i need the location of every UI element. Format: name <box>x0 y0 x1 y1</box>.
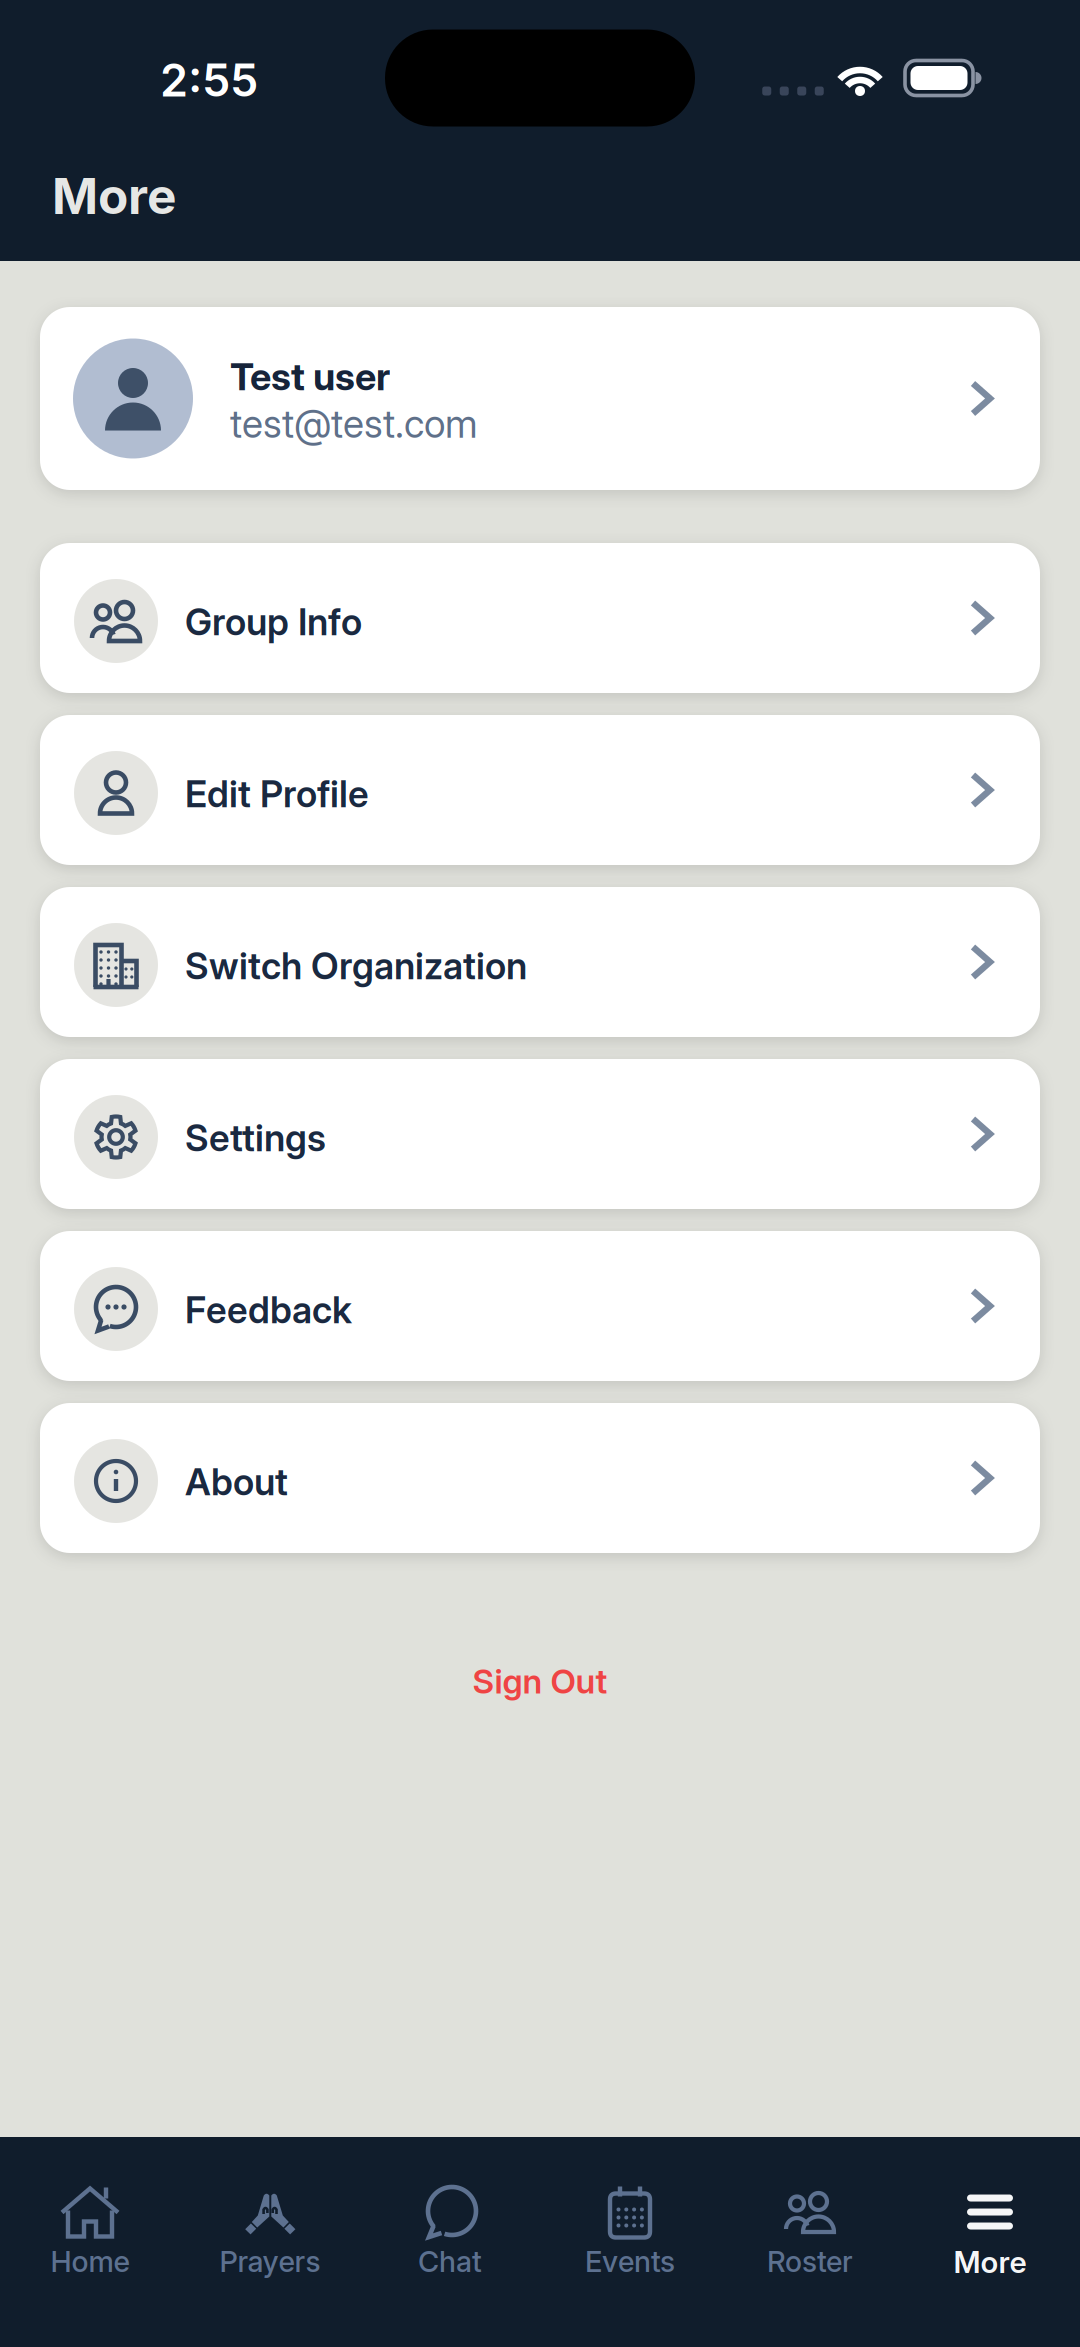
staticText: More <box>52 166 176 226</box>
staticText: Switch Organization <box>185 944 527 988</box>
staticText: Home <box>50 2244 129 2279</box>
button[interactable]: Sign Out <box>472 1661 607 1701</box>
button[interactable]: About <box>40 1403 1040 1553</box>
staticText: Events <box>585 2244 675 2279</box>
button[interactable]: Roster <box>720 2137 900 2347</box>
staticText: Settings <box>185 1116 326 1160</box>
staticText: More <box>953 2244 1026 2280</box>
staticText: About <box>185 1460 288 1504</box>
button[interactable]: Events <box>540 2137 720 2347</box>
button[interactable]: Feedback <box>40 1231 1040 1381</box>
button[interactable]: Switch Organization <box>40 887 1040 1037</box>
staticText: Chat <box>418 2244 482 2279</box>
button[interactable]: Test user <box>40 307 1040 490</box>
button[interactable]: More <box>900 2137 1080 2347</box>
button[interactable]: Prayers <box>180 2137 360 2347</box>
staticText: Test user <box>230 354 390 399</box>
staticText: Roster <box>767 2244 853 2279</box>
staticText: Edit Profile <box>185 772 369 816</box>
staticText: Group Info <box>185 600 362 644</box>
staticText: Feedback <box>185 1288 352 1332</box>
button[interactable]: Edit Profile <box>40 715 1040 865</box>
staticText: Prayers <box>219 2244 320 2279</box>
button[interactable]: Home <box>0 2137 180 2347</box>
button[interactable]: Group Info <box>40 543 1040 693</box>
staticText: test@test.com <box>230 400 478 447</box>
button[interactable]: Settings <box>40 1059 1040 1209</box>
staticText: Sign Out <box>472 1661 607 1701</box>
button[interactable]: Chat <box>360 2137 540 2347</box>
staticText: 2:55 <box>160 53 258 107</box>
